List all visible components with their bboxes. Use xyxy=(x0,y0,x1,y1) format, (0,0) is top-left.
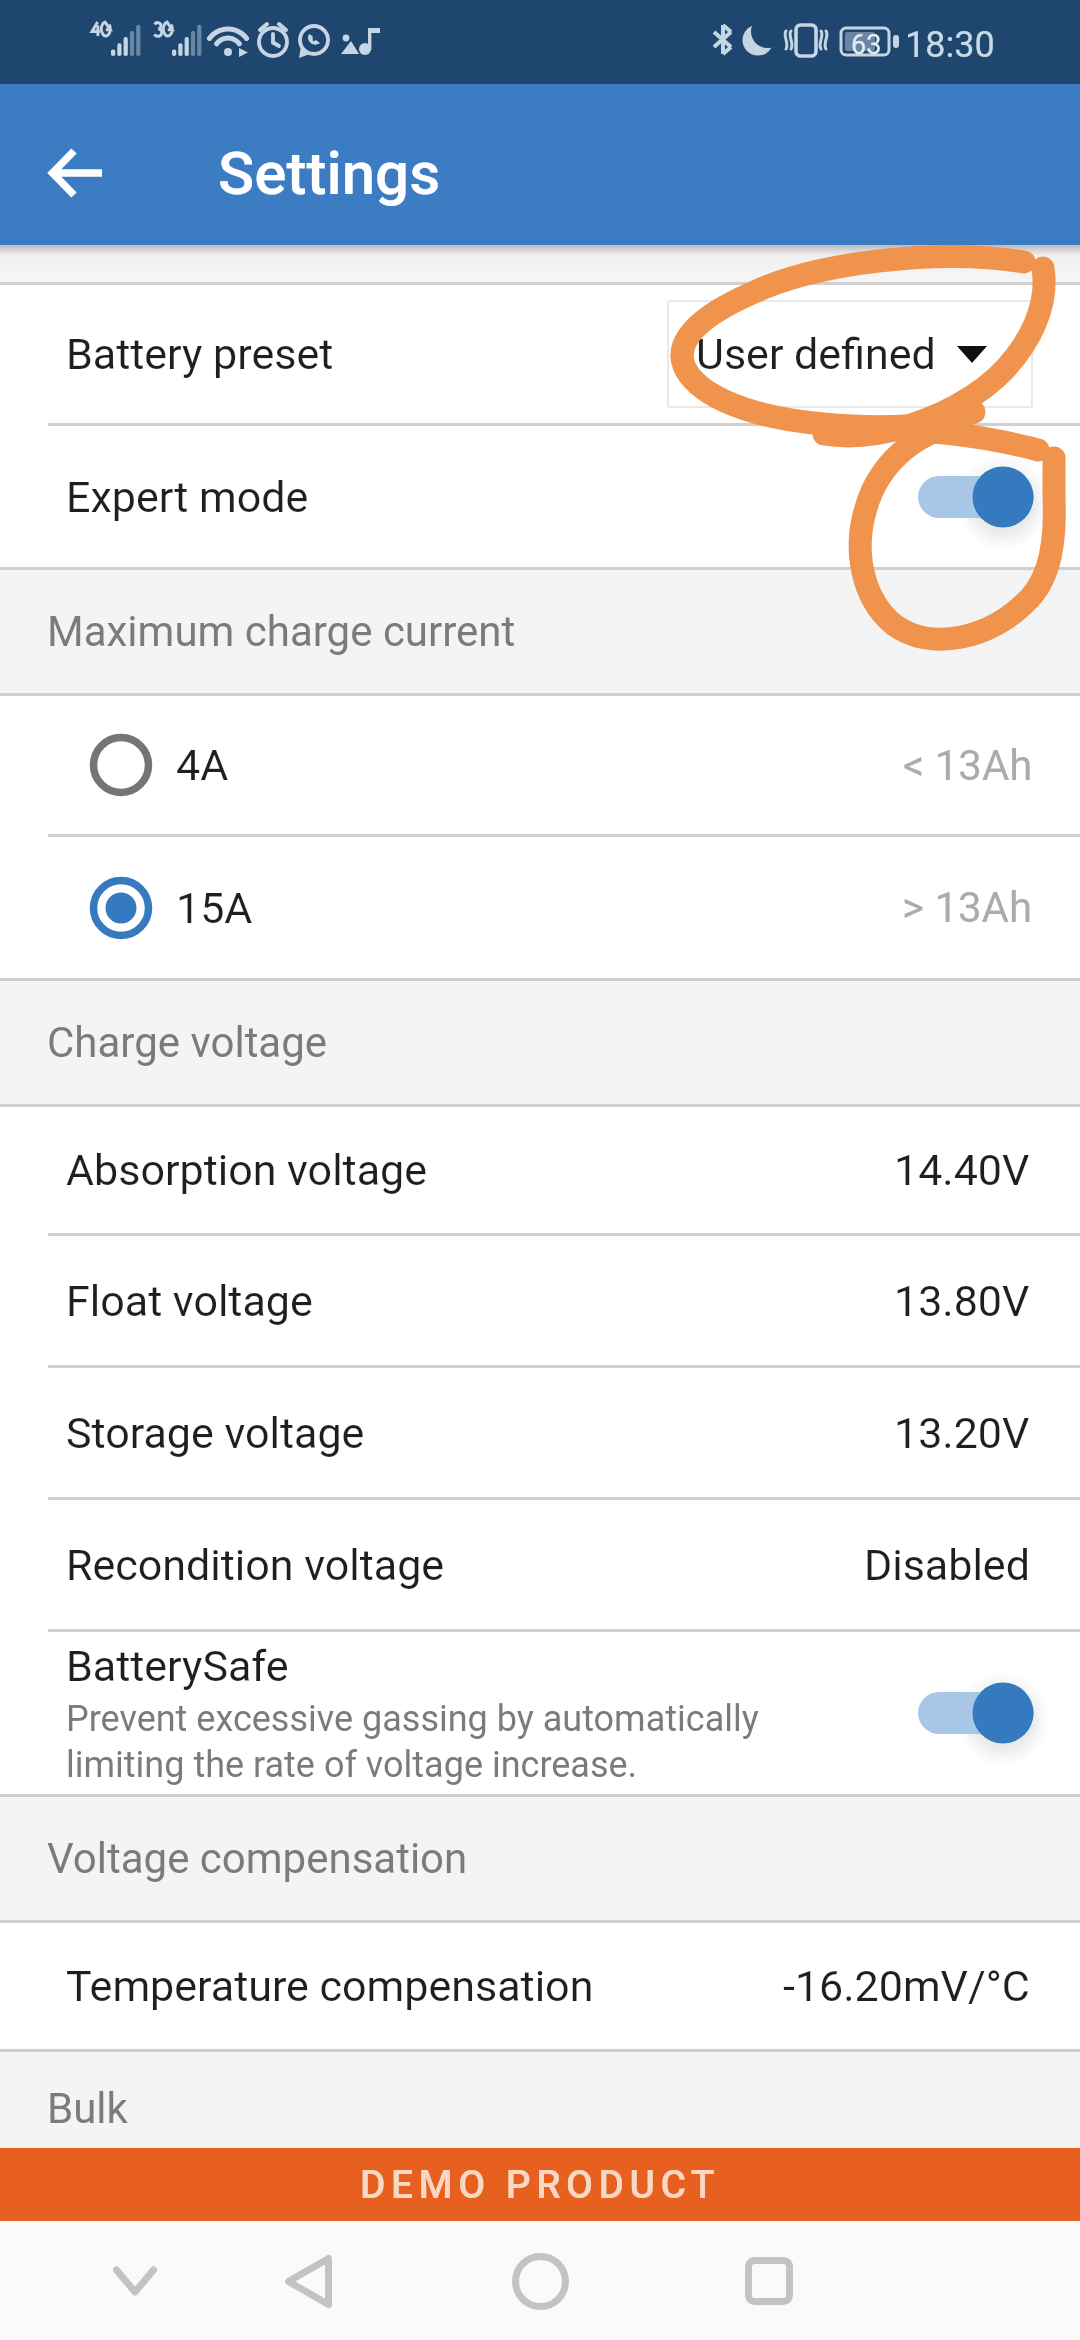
button[interactable]: Recondition voltage xyxy=(0,1500,1080,1629)
button[interactable]: Home xyxy=(495,2236,585,2326)
staticText: Disabled xyxy=(864,1540,1030,1590)
staticText: Float voltage xyxy=(66,1276,313,1326)
button[interactable]: Float voltage xyxy=(0,1236,1080,1365)
staticText: < 13Ah xyxy=(903,741,1033,790)
button[interactable]: Back xyxy=(263,2236,353,2326)
button[interactable]: Temperature compensation xyxy=(0,1923,1080,2049)
staticText: Expert mode xyxy=(66,472,309,522)
button[interactable]: Navigate up xyxy=(21,110,131,220)
button[interactable]: Expert mode xyxy=(0,426,1080,567)
staticText: Battery preset xyxy=(66,329,334,379)
button[interactable]: Absorption voltage xyxy=(0,1107,1080,1233)
staticText: Prevent excessive gassing by automatical… xyxy=(66,1698,780,1786)
staticText: Absorption voltage xyxy=(66,1145,427,1195)
staticText: Storage voltage xyxy=(66,1408,365,1458)
staticText: Settings xyxy=(218,138,441,208)
button[interactable]: Hide keyboard xyxy=(90,2236,180,2326)
button[interactable]: User defined xyxy=(667,300,1033,408)
button[interactable]: DEMO PRODUCT xyxy=(0,2148,1080,2221)
staticText: -16.20mV/°C xyxy=(783,1961,1030,2011)
staticText: Temperature compensation xyxy=(66,1961,594,2011)
button[interactable]: Toggle xyxy=(918,449,1042,545)
staticText: Recondition voltage xyxy=(66,1540,445,1590)
staticText: Maximum charge current xyxy=(47,607,516,656)
staticText: 18:30 xyxy=(905,24,995,66)
staticText: 63 xyxy=(851,29,882,61)
button[interactable]: Toggle xyxy=(918,1665,1042,1761)
staticText: DEMO PRODUCT xyxy=(360,2162,721,2208)
staticText: 4A xyxy=(176,740,229,790)
button[interactable]: 4A xyxy=(0,696,1080,834)
button[interactable]: Recent apps xyxy=(724,2236,814,2326)
staticText: 14.40V xyxy=(894,1145,1030,1195)
staticText: Charge voltage xyxy=(47,1018,328,1067)
staticText: User defined xyxy=(696,329,936,379)
staticText: Bulk xyxy=(47,2084,128,2133)
staticText: 13.80V xyxy=(894,1276,1030,1326)
button[interactable]: Battery preset xyxy=(0,285,1080,423)
staticText: BatterySafe xyxy=(66,1641,289,1691)
staticText: Voltage compensation xyxy=(47,1834,468,1883)
staticText: 13.20V xyxy=(894,1408,1030,1458)
staticText: > 13Ah xyxy=(902,883,1033,932)
button[interactable]: Storage voltage xyxy=(0,1368,1080,1497)
button[interactable]: BatterySafe xyxy=(0,1632,1080,1794)
staticText: 15A xyxy=(176,883,253,933)
button[interactable]: 15A xyxy=(0,837,1080,978)
